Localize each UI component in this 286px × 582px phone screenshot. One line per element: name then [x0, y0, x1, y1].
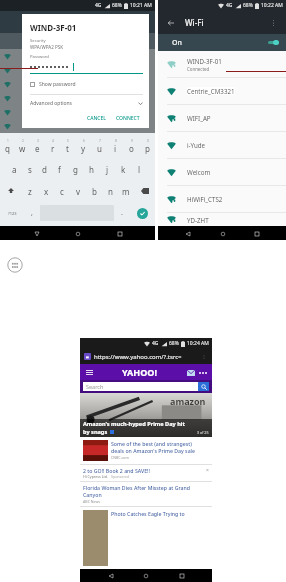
button[interactable]: d	[37, 158, 52, 180]
button[interactable]: 9	[123, 135, 139, 158]
button[interactable]: v	[70, 180, 86, 202]
staticText: y	[81, 143, 86, 154]
button[interactable]: a	[7, 158, 22, 180]
button[interactable]: Search	[198, 382, 209, 391]
button[interactable]: amazon	[80, 393, 212, 437]
staticText: Wi-Fi	[185, 17, 267, 28]
button[interactable]: More options	[267, 16, 280, 29]
staticText: ,	[31, 208, 33, 218]
button[interactable]: 8	[107, 135, 123, 158]
staticText: amazon	[170, 395, 206, 407]
button[interactable]: Recents	[251, 228, 262, 239]
button[interactable]: x	[38, 180, 54, 202]
button[interactable]: Mail	[186, 368, 195, 377]
button[interactable]: CONNECT	[113, 113, 143, 124]
staticText: 4G	[152, 340, 159, 347]
button[interactable]: 0	[139, 135, 155, 158]
staticText: Florida Woman Dies After Misstep at Gran…	[83, 484, 190, 491]
button[interactable]: ?123	[0, 202, 24, 224]
button[interactable]: Some of the best (and strangest)	[80, 437, 212, 464]
button[interactable]: n	[102, 180, 118, 202]
button[interactable]: Enter	[137, 208, 148, 219]
button[interactable]: .	[114, 202, 130, 224]
button[interactable]: CANCEL	[84, 113, 109, 124]
staticText: Welcom	[187, 168, 211, 176]
staticText: w	[19, 143, 26, 154]
button[interactable]: Home	[72, 228, 83, 239]
staticText: Advanced options	[30, 100, 138, 107]
button[interactable]: https://www.yahoo.com/?.tsrc=	[94, 353, 199, 361]
button[interactable]: 6	[75, 135, 91, 158]
staticText: a	[12, 164, 17, 175]
button[interactable]: WIND-3F-01	[158, 51, 286, 77]
staticText: .	[121, 208, 123, 218]
button[interactable]: Site info	[84, 353, 91, 360]
button[interactable]: HiWiFi_CTS2	[158, 186, 286, 212]
button[interactable]: 7	[91, 135, 107, 158]
staticText: b	[92, 186, 97, 197]
staticText: Search	[86, 383, 104, 390]
button[interactable]: Advanced options	[30, 100, 143, 107]
button[interactable]: Centrie_CM3321	[158, 78, 286, 104]
button[interactable]: l	[131, 158, 147, 180]
button[interactable]: App icon	[7, 257, 23, 273]
button[interactable]: 3	[30, 135, 45, 158]
button[interactable]: 2 to GO!! Book 2 and SAVE!!	[80, 465, 212, 481]
button[interactable]: Recents	[114, 228, 125, 239]
button[interactable]: h	[83, 158, 99, 180]
button[interactable]: 2	[15, 135, 30, 158]
staticText: l	[138, 164, 141, 175]
staticText: 10:24 AM	[187, 340, 209, 347]
button[interactable]: i-Yude	[158, 132, 286, 158]
button[interactable]: More	[198, 368, 207, 377]
staticText: 68%	[112, 2, 122, 9]
button[interactable]: 5	[60, 135, 75, 158]
button[interactable]: Recents	[177, 571, 187, 581]
button[interactable]: Menu	[85, 368, 94, 377]
staticText: 2	[22, 139, 24, 143]
button[interactable]: s	[22, 158, 37, 180]
button[interactable]: ,	[24, 202, 40, 224]
button[interactable]: More options	[199, 352, 208, 361]
staticText: x	[44, 186, 49, 197]
button[interactable]: k	[115, 158, 131, 180]
button[interactable]: Shift	[0, 180, 22, 202]
button[interactable]: Back	[106, 571, 116, 581]
button[interactable]: WIFI_AP	[158, 105, 286, 131]
button[interactable]: j	[99, 158, 115, 180]
staticText: r	[51, 143, 55, 154]
button[interactable]: Delete	[134, 180, 155, 202]
button[interactable]: Back	[164, 16, 177, 29]
button[interactable]: Home	[141, 571, 151, 581]
button[interactable]: 4	[45, 135, 60, 158]
button[interactable]: m	[118, 180, 134, 202]
staticText: Show password	[39, 81, 76, 88]
staticText: WIND-3F-01	[30, 22, 77, 33]
staticText: p	[145, 143, 150, 154]
staticText: WIND-3F-01	[187, 57, 222, 65]
button[interactable]: Florida Woman Dies After Misstep at Gran…	[80, 482, 212, 506]
button[interactable]: Show password	[30, 81, 143, 88]
button[interactable]: b	[86, 180, 102, 202]
staticText: Some of the best (and strangest)	[111, 440, 192, 447]
staticText: Security	[30, 38, 46, 44]
staticText: 68%	[243, 2, 253, 9]
button[interactable]: Back	[182, 228, 193, 239]
staticText: ABC News	[83, 499, 101, 504]
button[interactable]: Photo Catches Eagle Trying to	[80, 507, 212, 569]
staticText: g	[73, 164, 78, 175]
button[interactable]: On	[158, 34, 286, 51]
button[interactable]: c	[54, 180, 70, 202]
button[interactable]: 1	[0, 135, 15, 158]
button[interactable]: YD-ZHT	[158, 213, 286, 226]
button[interactable]: Search	[83, 382, 198, 391]
staticText: CNBC.com	[111, 455, 129, 460]
button[interactable]: Back	[31, 228, 42, 239]
button[interactable]: f	[52, 158, 67, 180]
button[interactable]: Home	[217, 228, 228, 239]
button[interactable]: g	[67, 158, 83, 180]
button[interactable]: z	[22, 180, 38, 202]
staticText: 0	[147, 139, 149, 143]
button[interactable]: Welcom	[158, 159, 286, 185]
